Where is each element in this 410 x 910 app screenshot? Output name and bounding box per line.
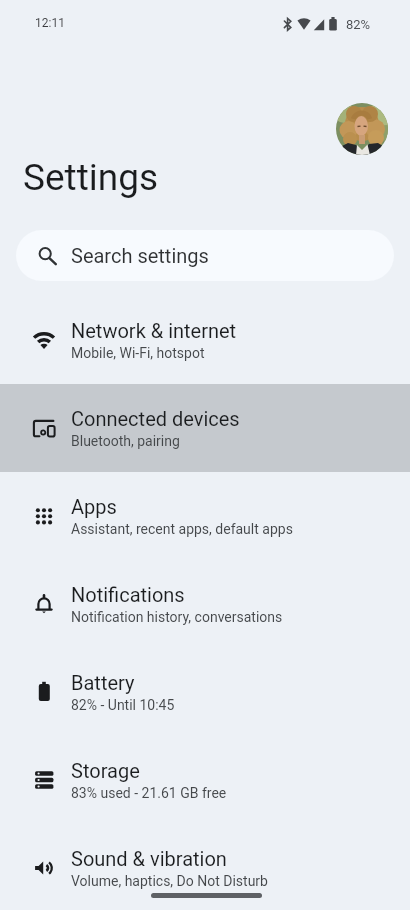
button[interactable]: Notifications xyxy=(0,560,410,648)
staticText: Storage xyxy=(71,759,140,782)
button[interactable]: Connected devices xyxy=(0,384,410,472)
staticText: 12:11 xyxy=(35,16,65,30)
staticText: Apps xyxy=(71,495,117,518)
staticText: 82% - Until 10:45 xyxy=(71,697,175,713)
button[interactable]: Sound & vibration xyxy=(0,824,410,910)
staticText: Connected devices xyxy=(71,407,240,430)
staticText: Notification history, conversations xyxy=(71,609,283,625)
button[interactable]: Battery xyxy=(0,648,410,736)
staticText: 83% used - 21.61 GB free xyxy=(71,785,227,801)
staticText: Mobile, Wi-Fi, hotspot xyxy=(71,345,205,361)
button[interactable]: Network & internet xyxy=(0,296,410,384)
button[interactable] xyxy=(336,103,388,155)
staticText: Sound & vibration xyxy=(71,847,227,870)
staticText: 82% xyxy=(346,17,371,32)
staticText: Volume, haptics, Do Not Disturb xyxy=(71,873,268,889)
button[interactable]: Storage xyxy=(0,736,410,824)
staticText: Notifications xyxy=(71,583,185,606)
button[interactable]: Apps xyxy=(0,472,410,560)
button[interactable]: Search settings xyxy=(16,230,394,281)
staticText: Battery xyxy=(71,671,135,694)
staticText: Assistant, recent apps, default apps xyxy=(71,521,293,537)
staticText: Network & internet xyxy=(71,319,237,342)
staticText: Search settings xyxy=(71,244,209,267)
staticText: Bluetooth, pairing xyxy=(71,433,180,449)
staticText: Settings xyxy=(23,156,159,199)
